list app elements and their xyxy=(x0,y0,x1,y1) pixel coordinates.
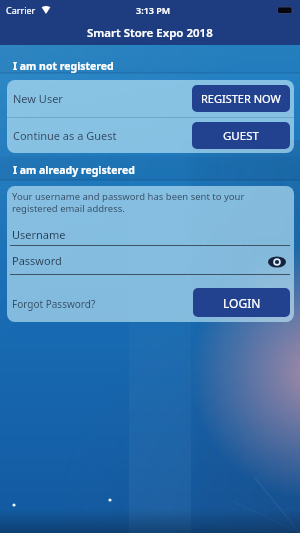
staticText: New User xyxy=(13,91,63,106)
staticText: 3:13 PM xyxy=(136,4,171,16)
button[interactable]: Forgot Password? xyxy=(12,297,96,311)
staticText: REGISTER NOW xyxy=(201,91,281,106)
staticText: GUEST xyxy=(223,128,259,144)
staticText: Carrier xyxy=(6,4,36,16)
button[interactable]: LOGIN xyxy=(193,288,290,317)
button[interactable] xyxy=(10,250,290,275)
staticText: Username xyxy=(12,227,66,242)
staticText: Continue as a Guest xyxy=(13,128,117,143)
staticText: Smart Store Expo 2018 xyxy=(87,25,213,41)
button[interactable] xyxy=(266,254,288,270)
button[interactable]: REGISTER NOW xyxy=(192,85,290,112)
staticText: LOGIN xyxy=(223,295,261,311)
button[interactable] xyxy=(10,223,290,246)
staticText: I am already registered xyxy=(13,163,135,177)
staticText: I am not registered xyxy=(13,59,114,73)
staticText: Your username and password has been sent… xyxy=(12,190,245,215)
button[interactable]: GUEST xyxy=(192,122,290,149)
staticText: Password xyxy=(12,253,62,268)
